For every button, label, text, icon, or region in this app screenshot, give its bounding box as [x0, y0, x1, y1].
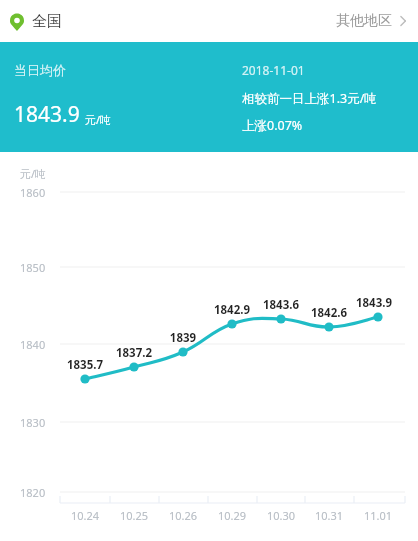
- staticText: 其他地区: [336, 12, 392, 30]
- staticText: 1850: [20, 260, 46, 275]
- button[interactable]: 当日均价: [0, 42, 418, 152]
- other: More regions: [396, 13, 410, 29]
- staticText: 1820: [20, 485, 46, 500]
- staticText: 1843.9: [14, 100, 80, 129]
- staticText: 元/吨: [20, 166, 47, 181]
- staticText: 2018-11-01: [242, 62, 305, 78]
- staticText: 1843.9: [344, 295, 404, 311]
- staticText: 当日均价: [14, 62, 66, 78]
- staticText: 1842.6: [299, 305, 359, 321]
- staticText: 元/吨: [85, 112, 112, 127]
- other: Location: [10, 13, 24, 31]
- staticText: 1843.6: [251, 297, 311, 313]
- staticText: 10.30: [257, 508, 305, 523]
- button[interactable]: Location: [10, 12, 62, 31]
- staticText: 上涨0.07%: [242, 117, 303, 134]
- staticText: 1830: [20, 415, 46, 430]
- staticText: 10.29: [208, 508, 256, 523]
- staticText: 1860: [20, 185, 46, 200]
- staticText: 1837.2: [104, 345, 164, 361]
- button[interactable]: 其他地区: [336, 12, 410, 30]
- staticText: 10.31: [305, 508, 353, 523]
- staticText: 1842.9: [202, 302, 262, 318]
- staticText: 10.25: [110, 508, 158, 523]
- staticText: 全国: [32, 12, 62, 31]
- staticText: 1839: [153, 330, 213, 346]
- staticText: 1840: [20, 337, 46, 352]
- staticText: 10.24: [61, 508, 109, 523]
- staticText: 相较前一日上涨1.3元/吨: [242, 90, 377, 107]
- staticText: 1835.7: [55, 357, 115, 373]
- staticText: 11.01: [354, 508, 402, 523]
- staticText: 10.26: [159, 508, 207, 523]
